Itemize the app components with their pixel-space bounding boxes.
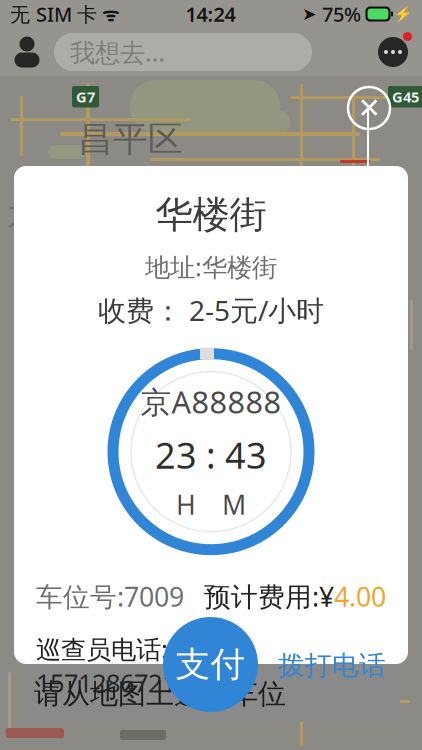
staticText: G45 bbox=[392, 87, 419, 106]
staticText: 拨打电话 bbox=[278, 649, 386, 682]
staticText: ⚡ bbox=[394, 6, 412, 22]
staticText: 无 SIM 卡 bbox=[10, 1, 97, 27]
staticText: 23 : 43 bbox=[155, 431, 267, 479]
staticText: 14:24 bbox=[185, 1, 235, 27]
button[interactable]: 支付 bbox=[163, 617, 258, 712]
staticText: 京 bbox=[8, 200, 35, 233]
staticText: 巡查员电话:15712867210 bbox=[36, 632, 190, 699]
staticText: 预计费用:¥ bbox=[204, 579, 334, 614]
staticText: 昌平区 bbox=[78, 118, 183, 161]
button[interactable]: 拨打电话 bbox=[278, 649, 386, 682]
staticText: ᯤ bbox=[97, 2, 119, 26]
staticText: 4.00 bbox=[334, 579, 386, 614]
staticText: 地址:华楼街 bbox=[145, 250, 277, 283]
staticText: G7 bbox=[76, 87, 95, 106]
staticText: ➤ bbox=[302, 4, 317, 24]
staticText: 支付 bbox=[175, 643, 245, 686]
button[interactable]: Profile bbox=[0, 28, 54, 76]
staticText: 华楼街 bbox=[155, 192, 266, 238]
staticText: ✕ bbox=[357, 92, 380, 124]
button[interactable]: 我想去… bbox=[54, 33, 312, 71]
staticText: 车位号:7009 bbox=[36, 579, 184, 614]
button[interactable]: Close bbox=[346, 85, 392, 131]
button[interactable]: Messages bbox=[364, 28, 422, 76]
staticText: 我想去… bbox=[70, 35, 165, 69]
staticText: M bbox=[222, 487, 246, 522]
staticText: 收费： 2-5元/小时 bbox=[98, 291, 324, 329]
staticText: 京A88888 bbox=[140, 381, 281, 422]
staticText: 75% bbox=[317, 1, 366, 27]
staticText: 请从地图上选择车位 bbox=[34, 677, 286, 711]
staticText: H bbox=[176, 487, 196, 522]
